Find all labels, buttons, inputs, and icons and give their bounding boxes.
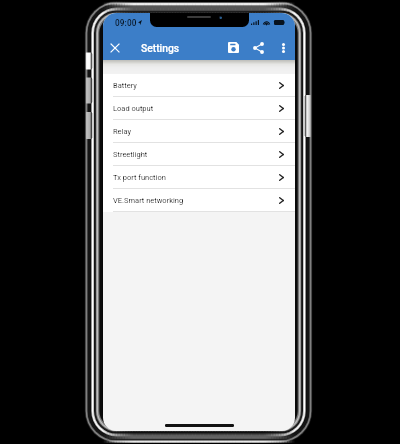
staticText: Settings: [141, 42, 180, 54]
button[interactable]: Share: [250, 39, 267, 56]
button[interactable]: Close: [106, 39, 123, 56]
button[interactable]: More options: [275, 39, 292, 56]
button[interactable]: Streetlight: [103, 143, 295, 166]
button[interactable]: Load output: [103, 97, 295, 120]
button[interactable]: Relay: [103, 120, 295, 143]
staticText: Tx port function: [113, 173, 166, 182]
button[interactable]: Battery: [103, 74, 295, 97]
button[interactable]: Tx port function: [103, 166, 295, 189]
button[interactable]: VE.Smart networking: [103, 189, 295, 212]
button[interactable]: Save: [225, 39, 242, 56]
staticText: Relay: [113, 127, 131, 136]
staticText: Battery: [113, 81, 137, 90]
staticText: Streetlight: [113, 150, 148, 159]
staticText: VE.Smart networking: [113, 196, 184, 205]
staticText: Load output: [113, 104, 154, 113]
staticText: 09:00: [115, 18, 137, 28]
